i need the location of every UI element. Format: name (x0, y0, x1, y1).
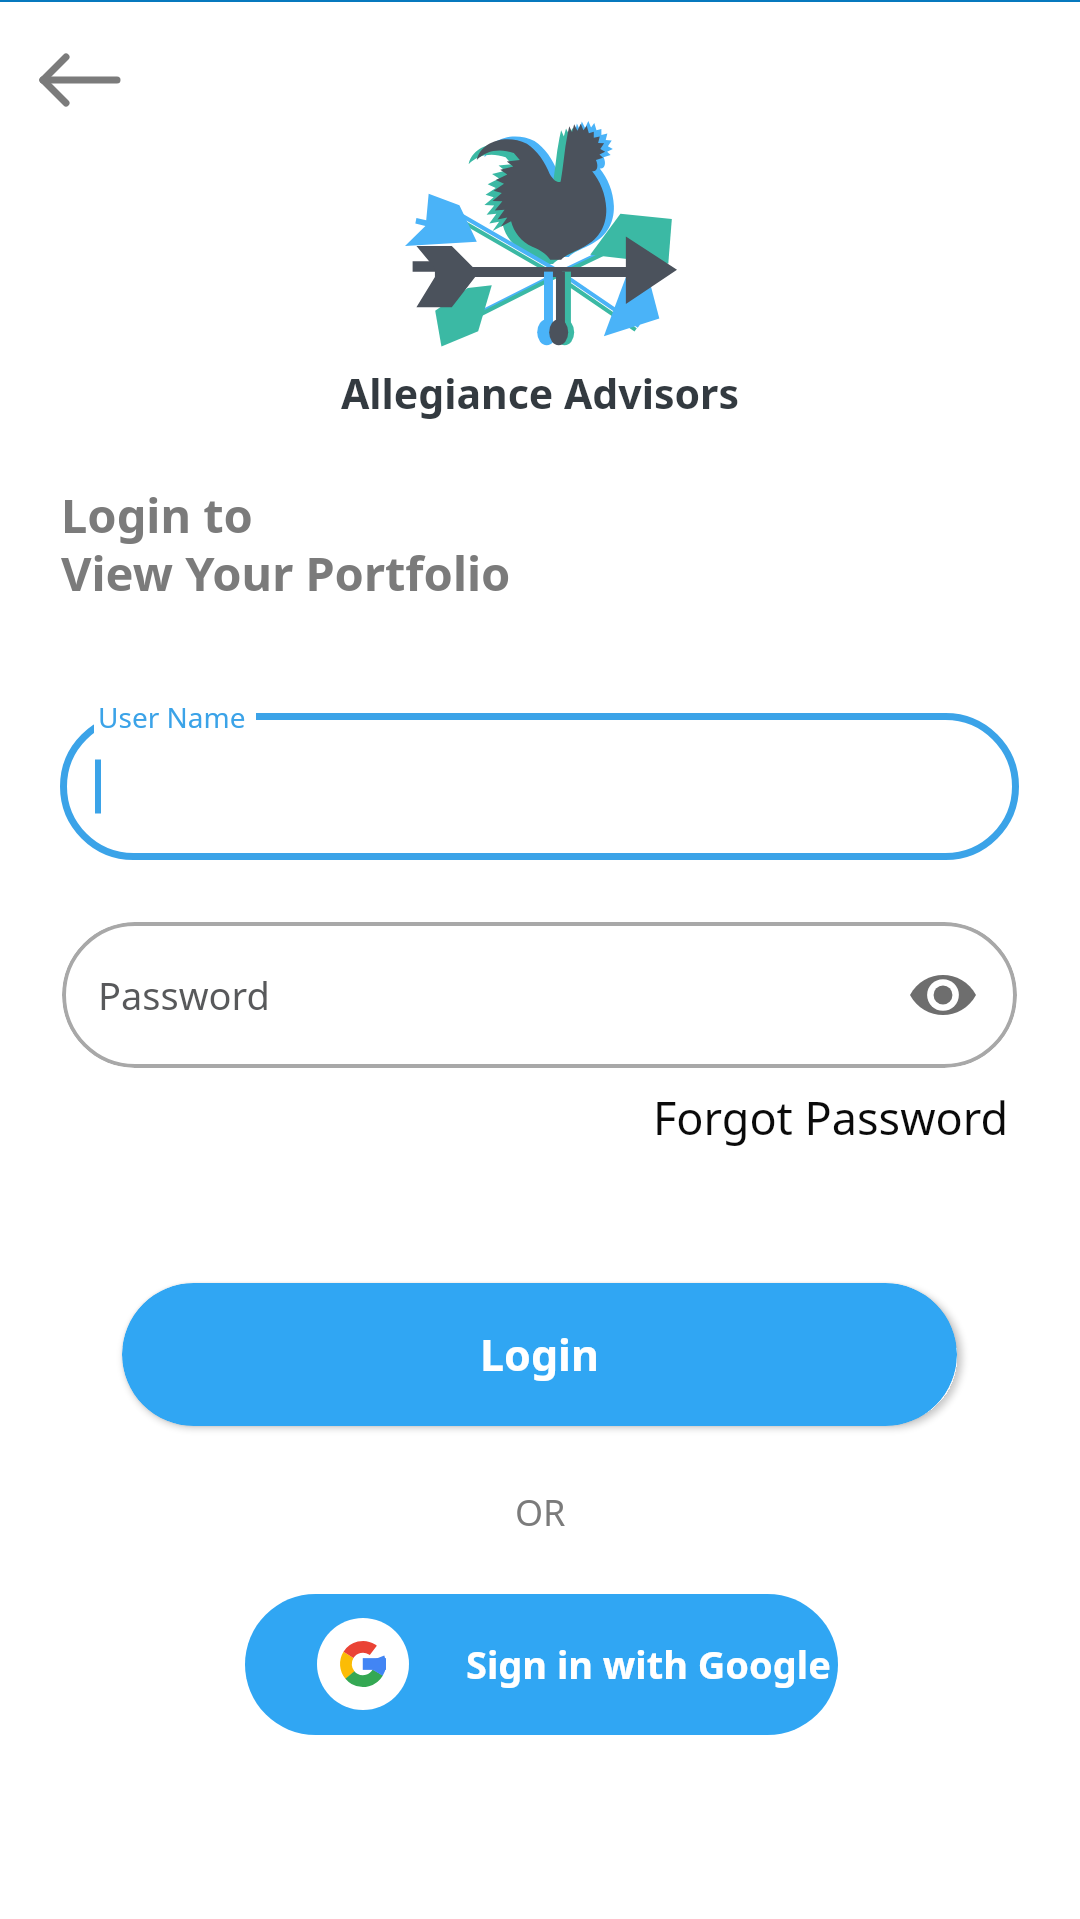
staticText: Sign in with Google (466, 1638, 831, 1690)
staticText: Password (98, 969, 270, 1021)
staticText: Login (480, 1325, 599, 1384)
button[interactable]: Password (62, 922, 1017, 1068)
staticText: User Name (98, 698, 246, 736)
button[interactable]: Show password (905, 957, 981, 1033)
button[interactable]: Login (122, 1283, 957, 1426)
button[interactable]: Forgot Password (653, 1087, 1009, 1148)
staticText: OR (515, 1488, 566, 1537)
button[interactable] (60, 713, 1019, 860)
staticText: Allegiance Advisors (341, 365, 740, 421)
button[interactable]: Sign in with Google (245, 1594, 838, 1735)
button[interactable]: Back (22, 23, 136, 137)
staticText: Login to View Your Portfolio (61, 483, 511, 605)
